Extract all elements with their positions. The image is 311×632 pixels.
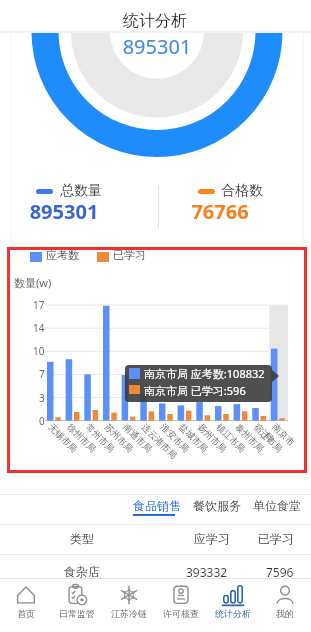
staticText: 已学习 bbox=[258, 531, 294, 546]
button[interactable]: 单位食堂 bbox=[246, 495, 302, 523]
button[interactable]: 首页 bbox=[0, 579, 51, 632]
staticText: 食杂店 bbox=[64, 564, 100, 579]
staticText: 7596 bbox=[266, 564, 294, 580]
staticText: 餐饮服务 bbox=[193, 498, 241, 513]
button[interactable]: 许可核查 bbox=[155, 579, 207, 632]
staticText: 393332 bbox=[186, 564, 228, 580]
staticText: 类型 bbox=[70, 531, 94, 546]
staticText: 895301 bbox=[77, 33, 237, 60]
button[interactable]: 统计分析 bbox=[207, 579, 259, 632]
staticText: 单位食堂 bbox=[253, 498, 301, 513]
staticText: 应学习 bbox=[194, 531, 230, 546]
staticText: 895301 bbox=[28, 198, 100, 225]
staticText: 总数量 bbox=[60, 182, 102, 200]
staticText: 日常监管 bbox=[59, 608, 95, 619]
button[interactable]: 食品销售 bbox=[126, 495, 182, 523]
button[interactable]: 餐饮服务 bbox=[186, 495, 242, 523]
staticText: 76766 bbox=[188, 198, 252, 225]
staticText: 首页 bbox=[17, 608, 35, 619]
staticText: 统计分析 bbox=[215, 608, 251, 619]
button[interactable]: 日常监管 bbox=[51, 579, 103, 632]
button[interactable] bbox=[7, 247, 307, 473]
staticText: 食品销售 bbox=[133, 498, 181, 513]
staticText: 合格数 bbox=[221, 182, 263, 200]
button[interactable]: 我的 bbox=[259, 579, 311, 632]
staticText: 许可核查 bbox=[163, 608, 199, 619]
staticText: 我的 bbox=[276, 608, 294, 619]
staticText: 统计分析 bbox=[75, 11, 235, 31]
button[interactable]: 江苏冷链 bbox=[103, 579, 155, 632]
button[interactable]: 食杂店 bbox=[0, 555, 311, 578]
staticText: 江苏冷链 bbox=[111, 608, 147, 619]
